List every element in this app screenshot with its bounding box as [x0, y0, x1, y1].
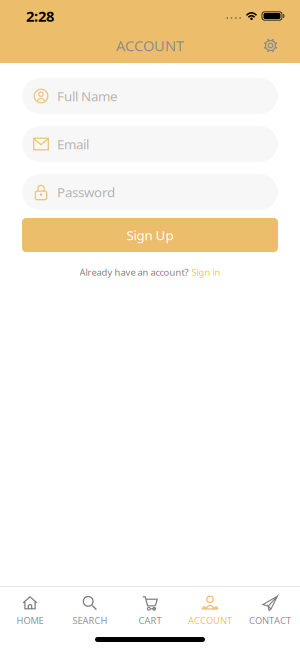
- staticText: Password: [57, 183, 115, 201]
- staticText: CONTACT: [249, 614, 291, 627]
- button[interactable]: SEARCH: [60, 595, 120, 627]
- staticText: Already have an account?: [79, 266, 188, 278]
- button[interactable]: HOME: [0, 595, 60, 627]
- staticText: HOME: [16, 614, 43, 627]
- button[interactable]: Settings: [262, 37, 300, 54]
- button[interactable]: CONTACT: [240, 595, 300, 627]
- staticText: CART: [138, 614, 161, 627]
- staticText: ACCOUNT: [188, 614, 232, 627]
- button[interactable]: ACCOUNT: [180, 595, 240, 627]
- button[interactable]: CART: [120, 595, 180, 627]
- staticText: Full Name: [57, 87, 118, 105]
- staticText: Email: [57, 135, 89, 153]
- button[interactable]: Sign in: [191, 266, 220, 278]
- button[interactable]: Full Name: [22, 78, 278, 114]
- staticText: 2:28: [26, 6, 54, 26]
- staticText: SEARCH: [72, 614, 107, 627]
- staticText: Sign in: [191, 266, 220, 278]
- staticText: Sign Up: [126, 226, 173, 244]
- button[interactable]: Email: [22, 126, 278, 162]
- staticText: ACCOUNT: [116, 36, 184, 55]
- button[interactable]: Sign Up: [22, 218, 278, 252]
- button[interactable]: Password: [22, 174, 278, 210]
